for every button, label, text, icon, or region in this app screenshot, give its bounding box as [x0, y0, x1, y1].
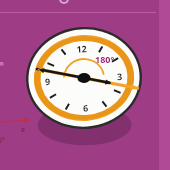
button[interactable]: Clock showing a 180 degree angle: [0, 0, 170, 170]
